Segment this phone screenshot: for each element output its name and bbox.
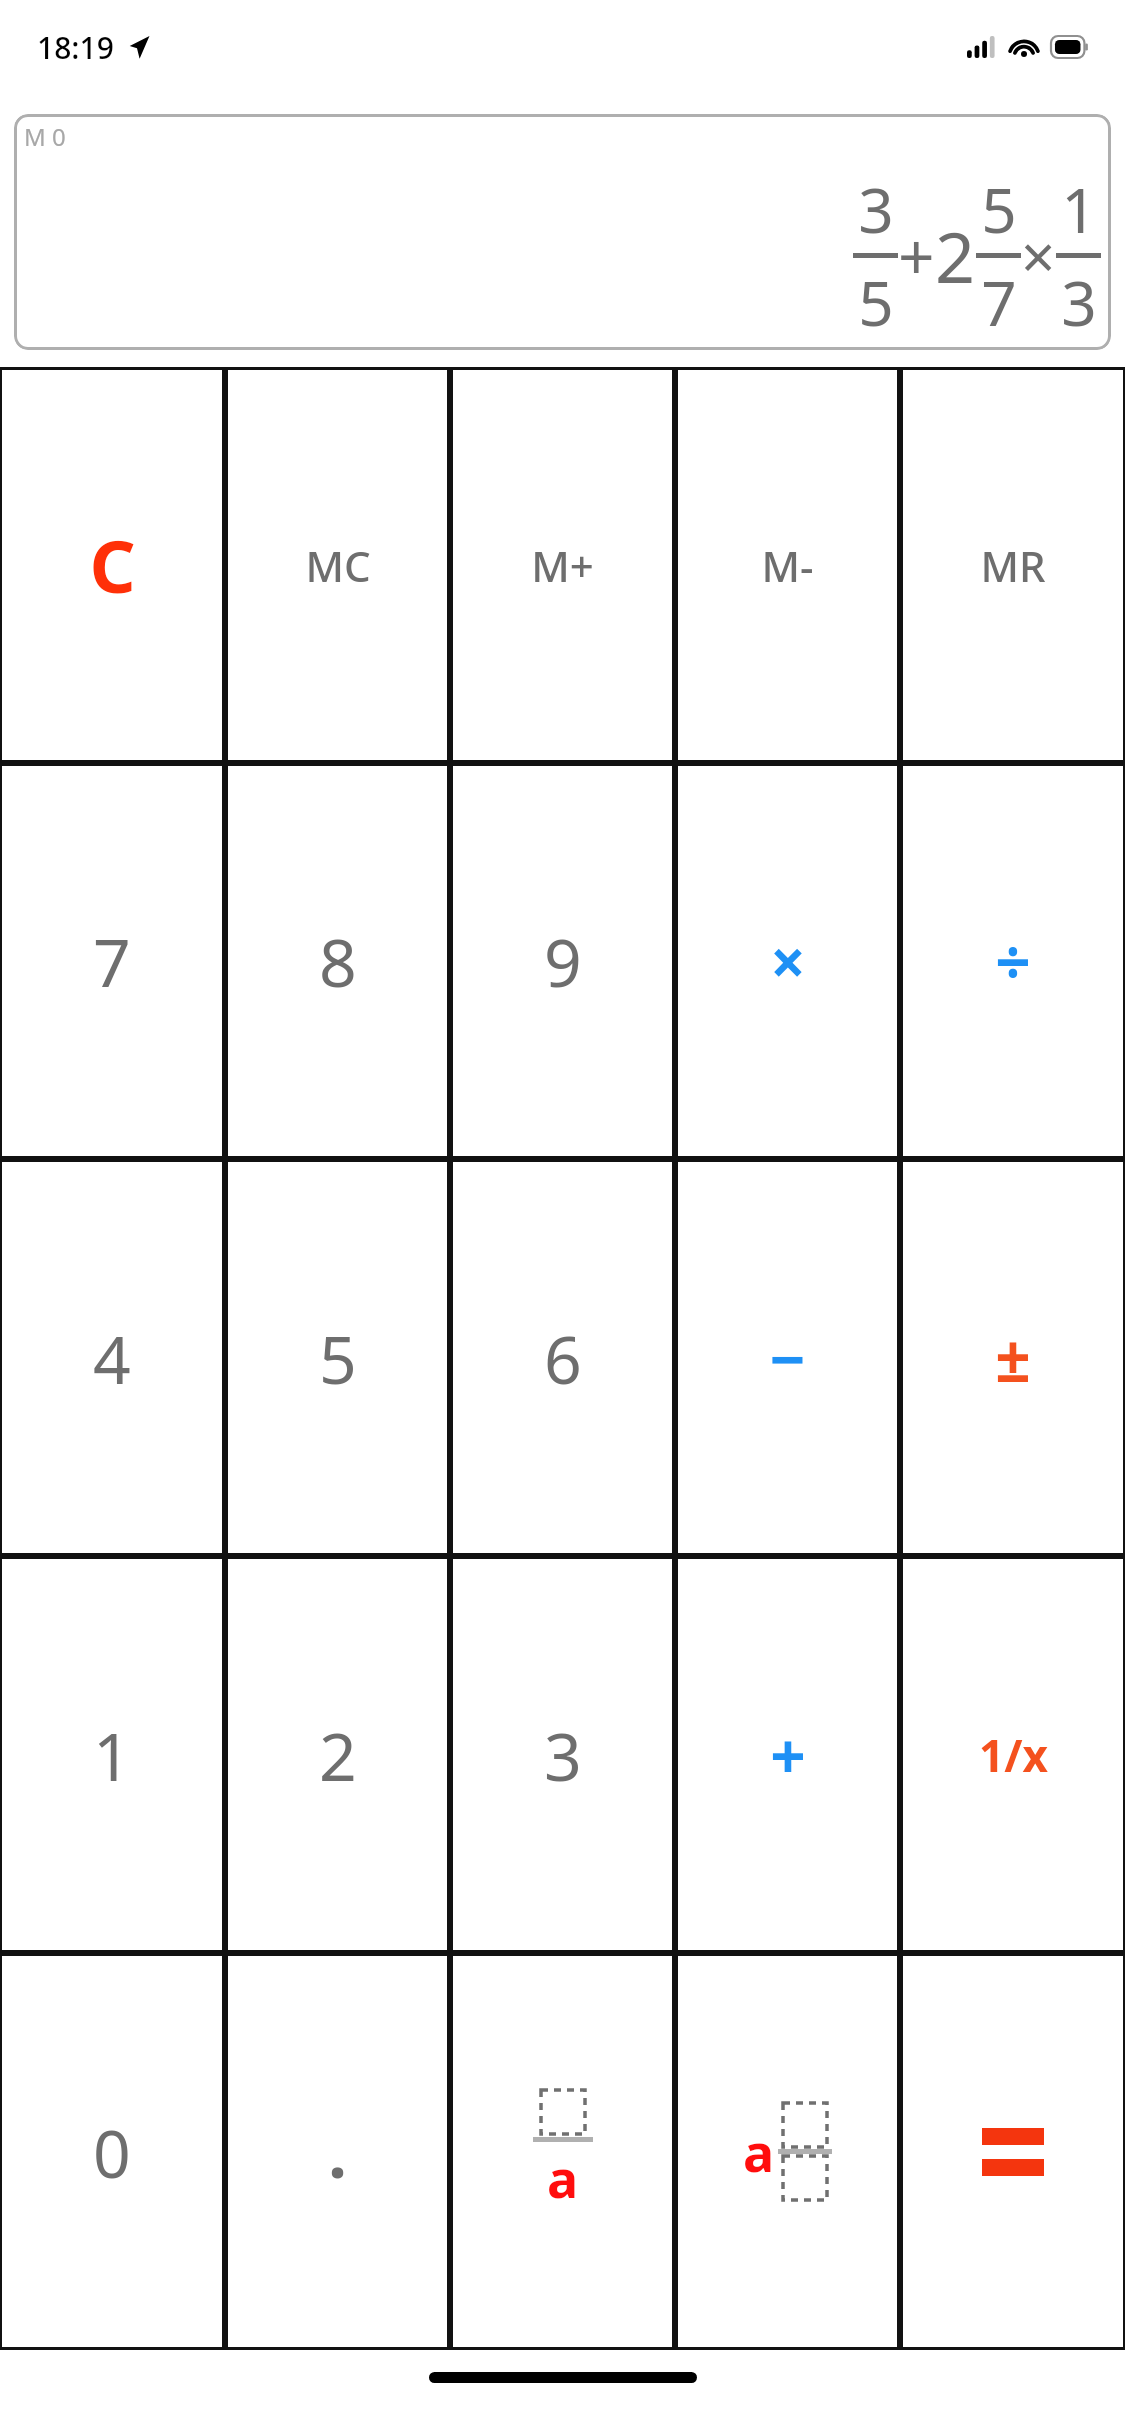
button[interactable]: 5	[228, 1162, 447, 1553]
button[interactable]: −	[678, 1162, 897, 1553]
staticText: M+	[531, 537, 594, 594]
button[interactable]: 6	[453, 1162, 672, 1553]
staticText: 2	[319, 1710, 357, 1800]
button[interactable]: MC	[228, 370, 447, 760]
staticText: 7	[981, 260, 1017, 344]
button[interactable]: M+	[453, 370, 672, 760]
staticText: 5	[981, 167, 1017, 251]
staticText: 18:19	[37, 27, 114, 68]
staticText: 3	[1061, 260, 1097, 344]
button[interactable]: +	[678, 1559, 897, 1950]
button[interactable]: 3	[453, 1559, 672, 1950]
other: Equals	[982, 2128, 1044, 2176]
staticText: 1	[1061, 167, 1097, 251]
button[interactable]: M-	[678, 370, 897, 760]
staticText: 3	[858, 167, 894, 251]
staticText: MR	[980, 537, 1046, 594]
staticText: +	[770, 1713, 806, 1797]
button[interactable]: 1	[2, 1559, 222, 1950]
button[interactable]: ×	[678, 766, 897, 1156]
staticText: C	[89, 516, 136, 614]
button[interactable]: ±	[903, 1162, 1123, 1553]
button[interactable]: 0	[2, 1956, 222, 2347]
button[interactable]: C	[2, 370, 222, 760]
staticText: +	[898, 212, 935, 299]
button[interactable]: Fraction template	[453, 1956, 672, 2347]
staticText: 1	[93, 1710, 131, 1800]
staticText: .	[328, 2107, 347, 2197]
staticText: 8	[319, 916, 357, 1006]
staticText: 2	[935, 208, 976, 303]
staticText: 5	[858, 260, 894, 344]
staticText: MC	[305, 537, 371, 594]
staticText: 0	[93, 2107, 131, 2197]
staticText: 9	[544, 916, 582, 1006]
button[interactable]: .	[228, 1956, 447, 2347]
staticText: 5	[319, 1313, 357, 1403]
button[interactable]: Mixed number template	[678, 1956, 897, 2347]
button[interactable]: Equals	[903, 1956, 1123, 2347]
staticText: 7	[93, 916, 131, 1006]
button[interactable]: 8	[228, 766, 447, 1156]
staticText: a	[547, 2142, 579, 2213]
staticText: ÷	[995, 919, 1031, 1003]
staticText: ±	[995, 1316, 1031, 1400]
button[interactable]: MR	[903, 370, 1123, 760]
staticText: 1/x	[979, 1725, 1048, 1785]
staticText: a	[743, 2116, 775, 2187]
staticText: 6	[544, 1313, 582, 1403]
button[interactable]: 1/x	[903, 1559, 1123, 1950]
button[interactable]: 2	[228, 1559, 447, 1950]
staticText: ×	[770, 919, 806, 1003]
button[interactable]: 7	[2, 766, 222, 1156]
button[interactable]: 4	[2, 1162, 222, 1553]
staticText: M 0	[24, 120, 66, 153]
staticText: −	[769, 1316, 806, 1400]
button[interactable]: ÷	[903, 766, 1123, 1156]
staticText: 3	[544, 1710, 582, 1800]
staticText: M-	[761, 537, 814, 594]
staticText: ×	[1021, 215, 1056, 297]
button[interactable]: 9	[453, 766, 672, 1156]
staticText: 4	[93, 1313, 131, 1403]
button[interactable]: M 0	[14, 114, 1111, 350]
